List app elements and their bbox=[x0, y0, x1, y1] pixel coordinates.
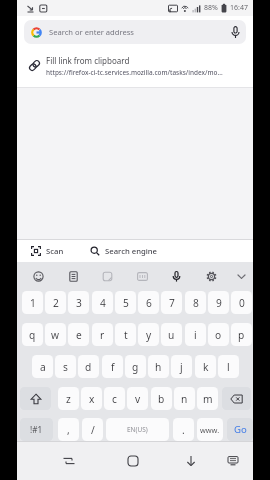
button[interactable]: l bbox=[218, 355, 239, 378]
staticText: r bbox=[100, 328, 105, 342]
staticText: g bbox=[132, 360, 139, 374]
staticText: / bbox=[91, 423, 95, 437]
button[interactable]: Search or enter address bbox=[24, 20, 246, 44]
staticText: www. bbox=[200, 425, 220, 435]
button[interactable]: r bbox=[92, 323, 113, 346]
staticText: , bbox=[67, 423, 70, 437]
button[interactable]: 2 bbox=[45, 291, 66, 314]
staticText: b bbox=[158, 392, 165, 406]
button[interactable]: o bbox=[208, 323, 229, 346]
staticText: c bbox=[112, 392, 117, 406]
button[interactable]: s bbox=[55, 355, 76, 378]
staticText: z bbox=[66, 392, 71, 406]
staticText: s bbox=[63, 360, 68, 374]
button[interactable] bbox=[62, 449, 76, 473]
button[interactable] bbox=[170, 270, 183, 283]
button[interactable]: u bbox=[161, 323, 182, 346]
staticText: 7 bbox=[169, 296, 175, 310]
staticText: h bbox=[155, 360, 162, 374]
staticText: i bbox=[194, 328, 197, 342]
button[interactable]: m bbox=[197, 387, 218, 410]
staticText: 8 bbox=[193, 296, 199, 310]
staticText: e bbox=[76, 328, 82, 342]
button[interactable]: 8 bbox=[185, 291, 206, 314]
button[interactable]: 3 bbox=[68, 291, 89, 314]
button[interactable] bbox=[222, 387, 251, 410]
staticText: 0 bbox=[239, 296, 245, 310]
staticText: 16:47 bbox=[230, 3, 248, 13]
button[interactable]: n bbox=[174, 387, 195, 410]
staticText: 6 bbox=[146, 296, 152, 310]
button[interactable]: / bbox=[82, 418, 103, 441]
button[interactable]: 5 bbox=[115, 291, 136, 314]
staticText: k bbox=[203, 360, 209, 374]
button[interactable]: z bbox=[58, 387, 79, 410]
staticText: a bbox=[40, 360, 46, 374]
button[interactable]: . bbox=[173, 418, 194, 441]
button[interactable]: d bbox=[78, 355, 99, 378]
button[interactable]: i bbox=[185, 323, 206, 346]
button[interactable] bbox=[32, 270, 45, 283]
button[interactable]: f bbox=[102, 355, 123, 378]
staticText: 3 bbox=[76, 296, 82, 310]
button[interactable]: e bbox=[68, 323, 89, 346]
button[interactable] bbox=[226, 449, 240, 473]
button[interactable]: a bbox=[32, 355, 53, 378]
button[interactable]: Scan bbox=[31, 240, 64, 262]
button[interactable]: 4 bbox=[92, 291, 113, 314]
button[interactable]: EN(US) bbox=[106, 418, 169, 441]
staticText: 1 bbox=[30, 296, 36, 310]
button[interactable]: j bbox=[171, 355, 192, 378]
button[interactable]: Search engine bbox=[90, 240, 158, 262]
staticText: Scan bbox=[46, 246, 64, 256]
button[interactable] bbox=[235, 270, 248, 283]
button[interactable]: c bbox=[104, 387, 125, 410]
button[interactable]: t bbox=[115, 323, 136, 346]
staticText: m bbox=[203, 392, 213, 406]
button[interactable]: 6 bbox=[138, 291, 159, 314]
button[interactable]: y bbox=[138, 323, 159, 346]
staticText: 88% bbox=[204, 3, 218, 13]
staticText: p bbox=[238, 328, 245, 342]
button[interactable]: w bbox=[45, 323, 66, 346]
button[interactable]: www. bbox=[197, 418, 223, 441]
button[interactable]: g bbox=[125, 355, 146, 378]
button[interactable]: h bbox=[148, 355, 169, 378]
button[interactable] bbox=[184, 449, 198, 473]
button[interactable]: , bbox=[58, 418, 79, 441]
staticText: n bbox=[181, 392, 188, 406]
button[interactable]: k bbox=[195, 355, 216, 378]
staticText: 5 bbox=[123, 296, 129, 310]
staticText: EN(US) bbox=[127, 425, 148, 434]
staticText: d bbox=[85, 360, 92, 374]
staticText: u bbox=[168, 328, 175, 342]
staticText: o bbox=[215, 328, 222, 342]
button[interactable] bbox=[136, 270, 149, 283]
staticText: x bbox=[89, 392, 95, 406]
button[interactable]: 7 bbox=[161, 291, 182, 314]
button[interactable] bbox=[126, 449, 140, 473]
staticText: j bbox=[180, 360, 183, 374]
staticText: y bbox=[146, 328, 152, 342]
button[interactable]: Fill link from clipboard bbox=[17, 48, 253, 87]
button[interactable]: p bbox=[231, 323, 252, 346]
staticText: Search or enter address bbox=[49, 27, 134, 37]
staticText: v bbox=[135, 392, 141, 406]
button[interactable]: v bbox=[127, 387, 148, 410]
button[interactable]: Go bbox=[227, 418, 253, 441]
button[interactable]: 0 bbox=[231, 291, 252, 314]
button[interactable] bbox=[101, 270, 114, 283]
button[interactable] bbox=[67, 270, 80, 283]
button[interactable]: !#1 bbox=[20, 418, 53, 441]
button[interactable]: b bbox=[151, 387, 172, 410]
staticText: 9 bbox=[216, 296, 222, 310]
button[interactable]: q bbox=[22, 323, 43, 346]
staticText: Search engine bbox=[105, 246, 158, 256]
button[interactable]: 1 bbox=[22, 291, 43, 314]
staticText: w bbox=[51, 328, 60, 342]
button[interactable] bbox=[205, 270, 218, 283]
button[interactable] bbox=[20, 387, 51, 410]
button[interactable]: 9 bbox=[208, 291, 229, 314]
staticText: 2 bbox=[53, 296, 59, 310]
button[interactable]: x bbox=[81, 387, 102, 410]
